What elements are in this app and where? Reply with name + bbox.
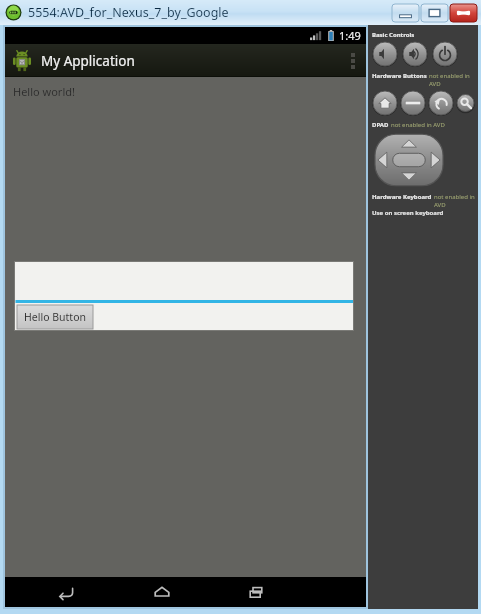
button[interactable]: Hello Button (17, 305, 93, 329)
staticText: Hardware Buttons (372, 72, 427, 80)
button[interactable]: Close (450, 4, 477, 22)
button[interactable] (15, 262, 353, 303)
button[interactable]: Menu (400, 90, 426, 116)
button[interactable]: Power (432, 41, 458, 67)
button[interactable]: Search (456, 90, 475, 116)
button[interactable]: Back (47, 577, 87, 607)
button[interactable]: More options (340, 44, 366, 77)
button[interactable]: Home (372, 90, 398, 116)
staticText: 5554:AVD_for_Nexus_7_by_Google (28, 4, 229, 21)
staticText: Basic Controls (372, 31, 415, 39)
button[interactable]: Back (428, 90, 454, 116)
staticText: Hello Button (24, 310, 86, 324)
button[interactable]: Window button (392, 4, 419, 22)
staticText: DPAD (372, 121, 389, 129)
staticText: Hardware Keyboard (372, 193, 432, 201)
staticText: not enabled in AVD (434, 193, 475, 209)
staticText: 1:49 (339, 28, 361, 43)
staticText: Hello world! (13, 84, 75, 99)
button[interactable]: Home (142, 577, 182, 607)
staticText: not enabled in AVD (391, 121, 445, 129)
button[interactable]: Volume up (402, 41, 428, 67)
button[interactable]: Window button (421, 4, 448, 22)
other: D-pad (372, 132, 446, 188)
staticText: Use on screen keyboard (372, 209, 444, 217)
staticText: not enabled in AVD (429, 72, 475, 88)
button[interactable]: Recent apps (237, 577, 277, 607)
button[interactable]: Volume down (372, 41, 398, 67)
staticText: My Application (41, 52, 135, 70)
